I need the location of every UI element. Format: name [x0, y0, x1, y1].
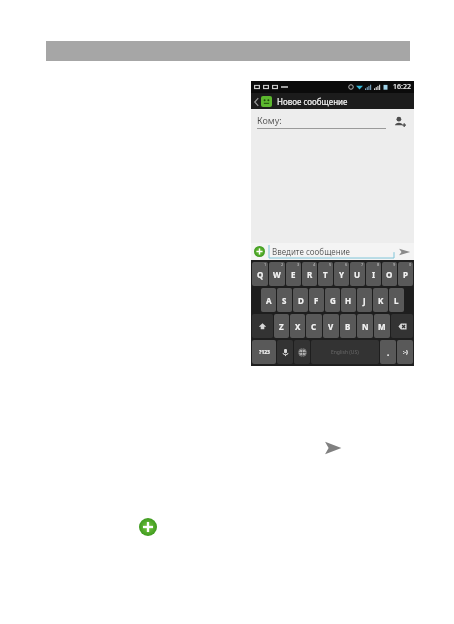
staticText: I [372, 269, 376, 280]
button[interactable]: Voice input [277, 340, 293, 364]
button[interactable]: :-) [397, 340, 413, 364]
staticText: Кому: [257, 114, 282, 126]
button[interactable]: English (US) [311, 340, 379, 364]
staticText: 7 [361, 262, 364, 267]
button[interactable] [254, 96, 272, 107]
button[interactable]: J [357, 288, 372, 312]
button[interactable]: 4 [302, 262, 317, 286]
staticText: 5 [329, 262, 332, 267]
staticText: K [378, 295, 384, 306]
button[interactable]: M [374, 314, 390, 338]
staticText: Введите сообщение [272, 246, 351, 257]
button[interactable]: . [380, 340, 396, 364]
button[interactable]: L [389, 288, 404, 312]
staticText: V [328, 321, 334, 332]
button[interactable]: Attach [254, 246, 265, 257]
button[interactable]: G [325, 288, 340, 312]
staticText: E [291, 269, 296, 280]
button[interactable]: A [261, 288, 276, 312]
staticText: :-) [403, 349, 408, 356]
button[interactable]: 0 [398, 262, 413, 286]
button[interactable]: D [293, 288, 308, 312]
staticText: . [387, 347, 390, 358]
button[interactable]: 3 [286, 262, 301, 286]
button[interactable]: C [306, 314, 322, 338]
staticText: G [330, 295, 336, 306]
button[interactable]: 6 [334, 262, 349, 286]
button[interactable]: ?123 [252, 340, 276, 364]
staticText: Y [339, 269, 345, 280]
staticText: ?123 [259, 349, 270, 356]
button[interactable]: 2 [269, 262, 285, 286]
button[interactable]: 8 [366, 262, 381, 286]
staticText: O [386, 269, 393, 280]
staticText: 1 [264, 262, 267, 267]
staticText: D [298, 295, 304, 306]
button[interactable]: Send [322, 437, 344, 459]
staticText: 9 [393, 262, 396, 267]
staticText: Q [257, 269, 264, 280]
staticText: H [345, 295, 352, 306]
button[interactable]: 9 [382, 262, 397, 286]
staticText: M [378, 321, 386, 332]
button[interactable]: Shift [252, 314, 273, 338]
staticText: 0 [409, 262, 412, 267]
staticText: 16:22 [393, 82, 411, 92]
button[interactable]: Backspace [391, 314, 413, 338]
button[interactable]: Attach [139, 518, 157, 536]
staticText: English (US) [331, 349, 359, 356]
button[interactable]: 7 [350, 262, 365, 286]
staticText: A [266, 295, 272, 306]
staticText: S [282, 295, 287, 306]
staticText: N [362, 321, 369, 332]
staticText: J [363, 295, 366, 306]
button[interactable]: X [290, 314, 305, 338]
button[interactable]: K [373, 288, 388, 312]
staticText: R [307, 269, 313, 280]
staticText: 8 [377, 262, 380, 267]
button[interactable]: B [340, 314, 356, 338]
staticText: C [311, 321, 317, 332]
button[interactable]: F [309, 288, 324, 312]
button[interactable]: Введите сообщение [269, 245, 394, 258]
staticText: 2 [281, 262, 284, 267]
button[interactable]: H [341, 288, 356, 312]
staticText: W [273, 269, 281, 280]
staticText: U [354, 269, 361, 280]
staticText: B [345, 321, 351, 332]
button[interactable]: Z [274, 314, 289, 338]
button[interactable]: V [323, 314, 339, 338]
staticText: P [403, 269, 408, 280]
button[interactable]: S [277, 288, 292, 312]
button[interactable]: Change language [294, 340, 310, 364]
button[interactable]: N [357, 314, 373, 338]
staticText: 4 [313, 262, 316, 267]
button[interactable]: Add contact [393, 115, 407, 129]
staticText: X [295, 321, 301, 332]
staticText: T [323, 269, 328, 280]
button[interactable]: Кому: [257, 114, 393, 129]
button[interactable]: 5 [318, 262, 333, 286]
button[interactable]: 1 [252, 262, 268, 286]
staticText: 3 [297, 262, 300, 267]
staticText: L [394, 295, 399, 306]
staticText: 6 [345, 262, 348, 267]
staticText: F [314, 295, 319, 306]
staticText: Z [279, 321, 284, 332]
button[interactable]: Send [397, 246, 412, 258]
staticText: Новое сообщение [277, 96, 348, 107]
